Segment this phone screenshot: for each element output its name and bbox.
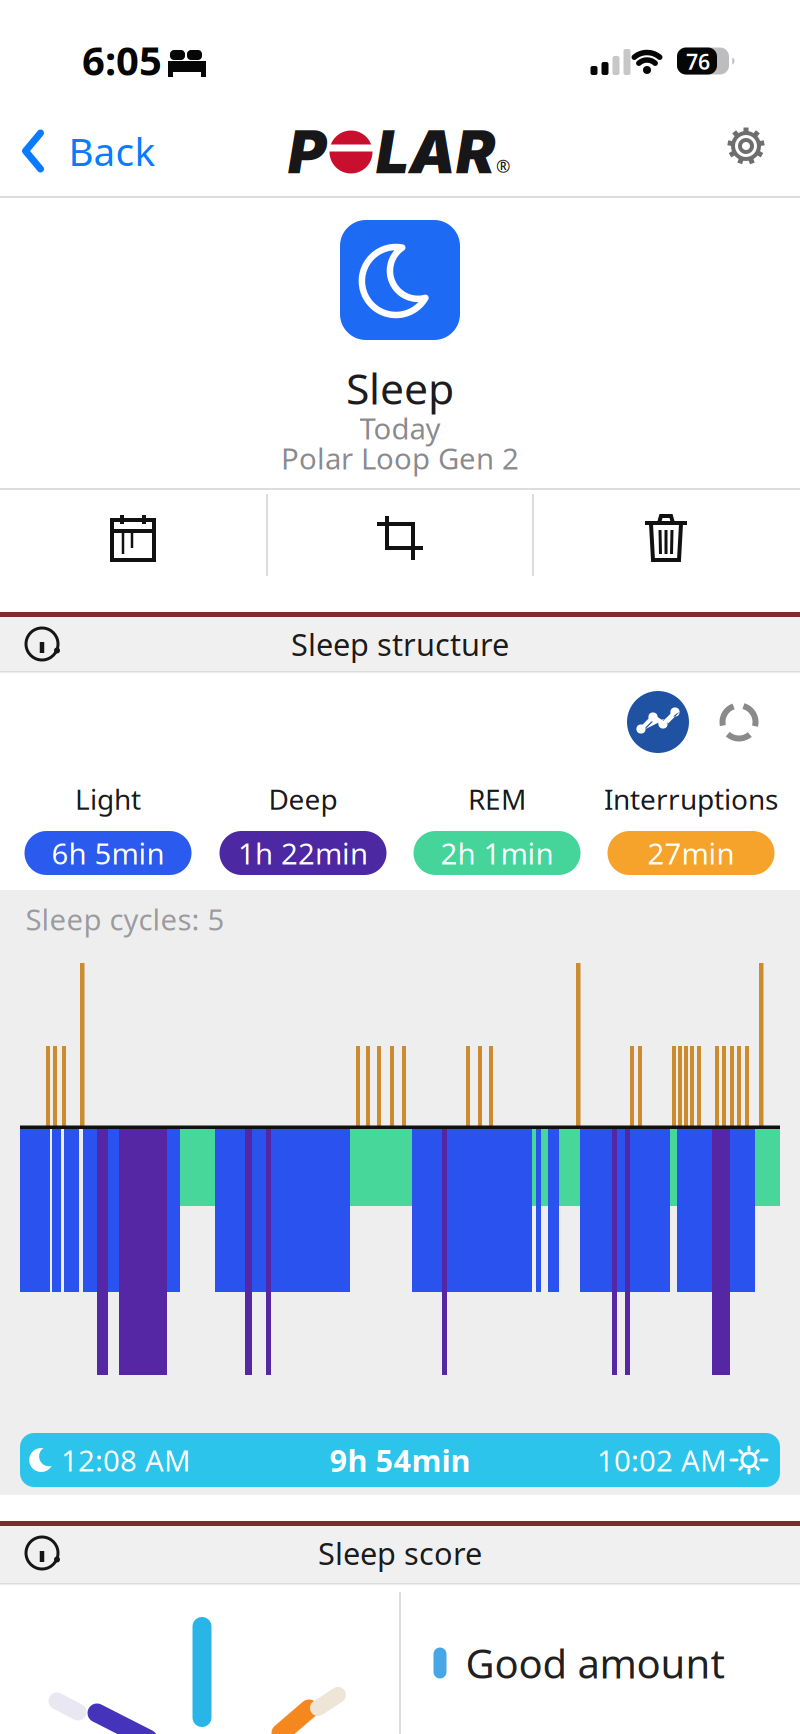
staticText: Back xyxy=(68,125,155,177)
button[interactable]: Back xyxy=(9,116,169,186)
button[interactable]: Info xyxy=(14,1526,70,1580)
button[interactable]: Chart view xyxy=(625,689,691,755)
staticText: 27min xyxy=(647,833,734,872)
button[interactable]: Info xyxy=(14,617,70,671)
button[interactable]: Calendar xyxy=(3,494,263,582)
staticText: 10:02 AM xyxy=(597,1440,727,1479)
staticText: LAR xyxy=(376,116,495,187)
staticText: Sleep score xyxy=(318,1533,482,1573)
staticText: Today xyxy=(359,408,440,447)
button[interactable]: Ring view xyxy=(720,703,758,741)
staticText: Deep xyxy=(268,780,337,818)
staticText: 12:08 AM xyxy=(61,1440,191,1479)
button[interactable]: Crop xyxy=(270,494,530,582)
staticText: Interruptions xyxy=(604,780,778,818)
staticText: Polar Loop Gen 2 xyxy=(281,438,519,477)
staticText: 2h 1min xyxy=(440,833,553,872)
staticText: P xyxy=(288,116,326,187)
staticText: ® xyxy=(496,154,510,177)
staticText: Light xyxy=(75,780,141,818)
staticText: Sleep cycles: 5 xyxy=(25,899,224,938)
staticText: Good amount xyxy=(465,1636,724,1689)
staticText: 9h 54min xyxy=(329,1440,470,1480)
staticText: 1h 22min xyxy=(238,833,368,872)
staticText: 6:05 xyxy=(82,33,162,86)
staticText: Sleep xyxy=(346,360,454,416)
staticText: 6h 5min xyxy=(51,833,164,872)
button[interactable]: Settings xyxy=(714,114,778,178)
staticText: Sleep structure xyxy=(291,624,509,664)
staticText: REM xyxy=(468,780,526,818)
staticText: 76 xyxy=(686,47,710,76)
button[interactable]: Delete xyxy=(536,494,796,582)
